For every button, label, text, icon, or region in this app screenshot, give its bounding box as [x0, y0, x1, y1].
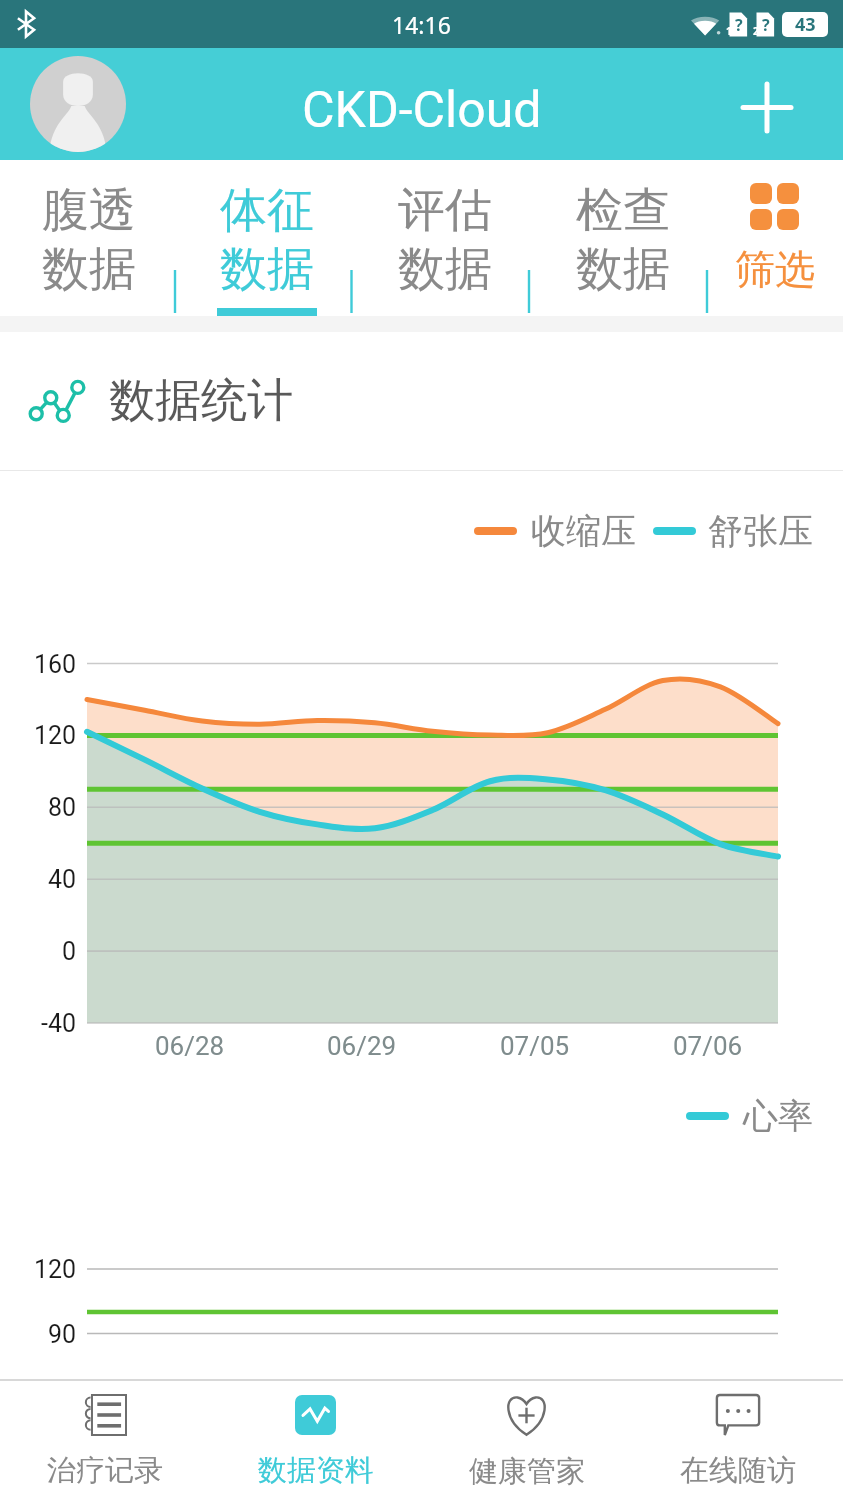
button[interactable]: 体征	[178, 160, 356, 316]
staticText: 数据	[576, 240, 670, 299]
staticText: CKD-Cloud	[302, 81, 542, 140]
staticText: 80	[48, 793, 77, 822]
staticText: 43	[795, 12, 816, 37]
staticText: 07/05	[500, 1031, 570, 1061]
button[interactable]: 筛选	[712, 160, 843, 316]
staticText: 治疗记录	[47, 1452, 163, 1489]
staticText: 健康管家	[469, 1453, 585, 1490]
staticText: 舒张压	[708, 509, 813, 553]
staticText: ?	[735, 14, 743, 36]
staticText: 检查	[576, 181, 670, 240]
button[interactable]: 评估	[356, 160, 534, 316]
staticText: 在线随访	[680, 1452, 796, 1489]
staticText: 06/28	[155, 1031, 225, 1061]
button[interactable]: 腹透	[0, 160, 178, 316]
staticText: 07/06	[673, 1031, 743, 1061]
staticText: 1	[726, 24, 732, 38]
button[interactable]: 健康管家	[421, 1381, 632, 1500]
staticText: 120	[34, 1255, 77, 1284]
staticText: 06/29	[327, 1031, 397, 1061]
staticText: 90	[48, 1320, 77, 1349]
button[interactable]: Add	[732, 72, 802, 142]
staticText: -40	[41, 1009, 77, 1038]
staticText: 40	[48, 865, 77, 894]
staticText: ?	[762, 14, 770, 36]
staticText: 数据资料	[258, 1452, 374, 1489]
staticText: 数据统计	[109, 372, 293, 430]
button[interactable]: 在线随访	[632, 1381, 843, 1500]
staticText: 筛选	[735, 244, 815, 294]
staticText: 120	[34, 721, 77, 750]
staticText: 数据	[220, 240, 314, 299]
staticText: 14:16	[392, 9, 451, 40]
staticText: 心率	[743, 1094, 813, 1138]
button[interactable]: 数据资料	[210, 1381, 421, 1500]
staticText: 腹透	[42, 181, 136, 240]
staticText: 体征	[220, 181, 314, 240]
staticText: 数据	[398, 240, 492, 299]
button[interactable]: 治疗记录	[0, 1381, 210, 1500]
staticText: 评估	[398, 181, 492, 240]
staticText: 0	[62, 937, 77, 966]
button[interactable]: Profile	[30, 56, 126, 152]
staticText: 2	[753, 24, 759, 38]
button[interactable]: 检查	[534, 160, 712, 316]
staticText: 收缩压	[531, 509, 636, 553]
staticText: 160	[34, 650, 77, 679]
staticText: 数据	[42, 240, 136, 299]
